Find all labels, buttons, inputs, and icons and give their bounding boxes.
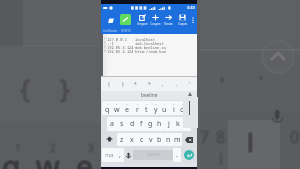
staticText: 3 (87, 140, 93, 154)
staticText: 0 (290, 127, 300, 149)
staticText: o (180, 105, 185, 115)
staticText: 7 (200, 125, 210, 147)
staticText: Печать (164, 22, 173, 26)
button[interactable]: * (145, 77, 154, 91)
staticText: w (35, 145, 59, 169)
button[interactable]: { (104, 77, 113, 91)
staticText: c (140, 135, 144, 145)
staticText: q (2, 147, 21, 169)
staticText: w (35, 146, 59, 169)
staticText: 0 (291, 126, 300, 148)
button[interactable]: v (146, 133, 155, 146)
staticText: { (21, 70, 31, 105)
staticText: i (218, 147, 223, 169)
button[interactable]: 0 (187, 101, 196, 115)
staticText: 2 (50, 142, 56, 156)
staticText: e (75, 145, 92, 169)
staticText: 2 (51, 141, 57, 155)
button[interactable]: 6 (151, 101, 160, 115)
staticText: 2 (51, 140, 57, 154)
button[interactable]: . (172, 77, 181, 91)
staticText: } (60, 69, 70, 104)
button[interactable]: } (118, 77, 127, 91)
staticText: q (3, 147, 22, 169)
button[interactable]: Печать (162, 14, 175, 26)
staticText: e (77, 145, 94, 169)
button[interactable]: 9 (178, 101, 187, 115)
staticText: 1 (15, 142, 21, 156)
button[interactable]: k (173, 117, 182, 131)
staticText: r (136, 105, 139, 115)
staticText: 0 (291, 127, 300, 149)
button[interactable]: h (155, 117, 164, 131)
staticText: ::1 (107, 41, 114, 45)
button[interactable]: . (173, 148, 181, 162)
staticText: x (130, 135, 134, 145)
staticText: Открыть (137, 22, 148, 26)
staticText: } (122, 81, 124, 88)
button[interactable]: ?123 (102, 148, 116, 162)
staticText: e (76, 145, 93, 169)
button[interactable]: Space (133, 150, 173, 160)
staticText: w (35, 147, 59, 169)
button[interactable]: Shift (102, 133, 117, 146)
staticText: 8 (173, 102, 175, 105)
button[interactable]: 2 (112, 101, 122, 115)
staticText: w (36, 145, 60, 169)
button[interactable]: a (107, 117, 117, 131)
staticText: q (2, 146, 21, 169)
button[interactable]: ' (185, 77, 194, 91)
staticText: } (61, 71, 71, 106)
button[interactable]: 1 (102, 101, 112, 115)
staticText: i (218, 149, 223, 169)
button[interactable]: 7 (160, 101, 169, 115)
staticText: q (1, 146, 20, 169)
button[interactable]: x (127, 133, 137, 146)
button[interactable]: 8 (169, 101, 178, 115)
button[interactable]: d (127, 117, 137, 131)
button[interactable]: Folder (106, 16, 115, 25)
button[interactable]: beeline (101, 91, 197, 100)
button[interactable]: Открыть (136, 14, 149, 26)
button[interactable]: s (117, 117, 127, 131)
staticText: w (36, 146, 60, 169)
staticText: 3 (89, 142, 95, 156)
staticText: 8 (217, 126, 227, 148)
staticText: 2 (49, 140, 55, 154)
button[interactable]: g (146, 117, 155, 131)
button[interactable]: c (137, 133, 146, 146)
staticText: l (248, 123, 255, 158)
staticText: } (60, 70, 70, 105)
button[interactable]: f (137, 117, 146, 131)
button[interactable]: j (164, 117, 173, 131)
staticText: 8 (216, 125, 226, 147)
staticText: 1 (16, 141, 22, 155)
button[interactable]: 4 (132, 101, 142, 115)
button[interactable]: Voice input (124, 148, 133, 162)
button[interactable]: , (116, 148, 124, 162)
button[interactable]: Enter (184, 150, 194, 160)
button[interactable]: Сохран. (176, 14, 189, 26)
button[interactable]: 3 (122, 101, 132, 115)
button[interactable]: z (117, 133, 127, 146)
staticText: mob.beeline.ru (135, 45, 166, 49)
button[interactable]: b (155, 133, 164, 146)
staticText: l (248, 124, 255, 159)
staticText: { (108, 81, 110, 88)
staticText: } (61, 70, 71, 105)
button[interactable]: m (173, 133, 182, 146)
button[interactable]: Создать (149, 14, 162, 26)
button[interactable]: n (164, 133, 173, 146)
button[interactable]: * (131, 77, 140, 91)
button[interactable]: 5 (142, 101, 151, 115)
button[interactable]: Edit (120, 14, 131, 25)
button[interactable]: l (182, 117, 191, 131)
button[interactable]: More options (190, 15, 195, 24)
button[interactable]: Backspace (182, 133, 196, 146)
staticText: { (19, 70, 29, 105)
staticText: e (76, 147, 93, 169)
staticText: QWERTY (147, 153, 160, 157)
staticText: e (77, 147, 94, 169)
button[interactable]: , (158, 77, 167, 91)
staticText: 3 (87, 141, 93, 155)
